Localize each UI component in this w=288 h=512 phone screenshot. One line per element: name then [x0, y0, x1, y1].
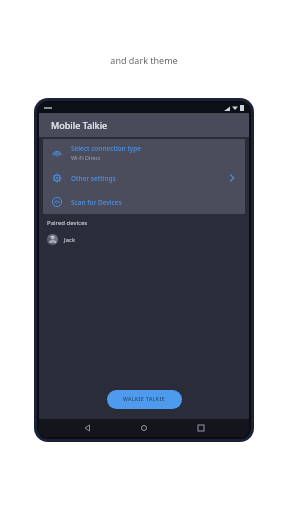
staticText: Select connection type	[71, 144, 142, 153]
button[interactable]: Scan for Devices	[43, 190, 245, 214]
button[interactable]: Jack	[47, 232, 241, 247]
other: Open other settings	[227, 173, 237, 183]
staticText: Wi-Fi Direct	[71, 154, 101, 161]
staticText: WALKIE TALKIE	[123, 396, 166, 403]
staticText: and dark theme	[110, 54, 178, 66]
staticText: Scan for Devices	[71, 198, 122, 207]
staticText: Other settings	[71, 174, 116, 183]
button[interactable]: Home	[136, 420, 152, 436]
button[interactable]: Select connection type	[43, 139, 245, 166]
staticText: Paired devices	[47, 219, 88, 227]
button[interactable]: Other settings	[43, 166, 245, 190]
button[interactable]: Back	[80, 420, 96, 436]
button[interactable]: Recent apps	[193, 420, 209, 436]
staticText: Mobile Talkie	[51, 119, 108, 131]
staticText: Jack	[64, 236, 76, 244]
button[interactable]: WALKIE TALKIE	[107, 390, 182, 409]
